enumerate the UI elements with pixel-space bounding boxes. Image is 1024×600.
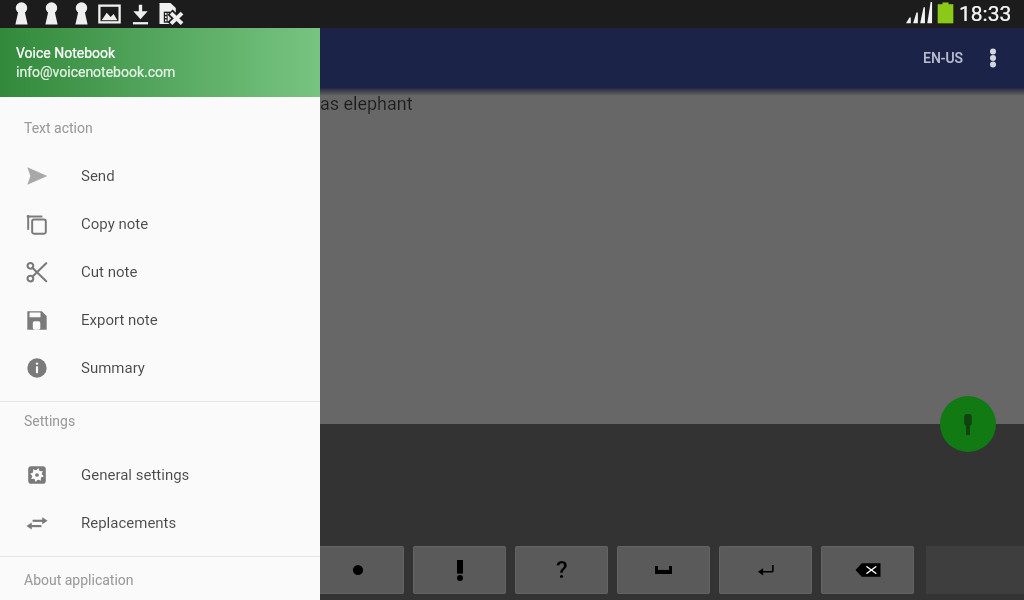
staticText: Export note	[81, 311, 158, 329]
button[interactable]: Exclamation mark key	[413, 546, 506, 594]
staticText: General settings	[81, 466, 190, 484]
button[interactable]: Send	[0, 152, 320, 200]
staticText: as elephant	[320, 93, 413, 114]
staticText: About application	[24, 572, 134, 588]
staticText: ?	[556, 556, 568, 584]
button[interactable]: Copy note	[0, 200, 320, 248]
button[interactable]: EN-US	[913, 38, 974, 78]
staticText: Voice Notebook	[16, 45, 116, 61]
button[interactable]: Enter key	[719, 546, 812, 594]
button[interactable]: Record voice	[940, 396, 996, 452]
staticText: info@voicenotebook.com	[16, 64, 176, 80]
staticText: Text action	[24, 120, 93, 136]
button[interactable]: More options	[974, 34, 1012, 82]
staticText: Cut note	[81, 263, 138, 281]
staticText: Send	[81, 167, 115, 185]
button[interactable]: Backspace key	[821, 546, 914, 594]
staticText: Settings	[24, 413, 76, 429]
button[interactable]: Question mark key	[515, 546, 608, 594]
button[interactable]: Summary	[0, 344, 320, 392]
button[interactable]: Cut note	[0, 248, 320, 296]
button[interactable]: Period key	[311, 546, 404, 594]
staticText: Copy note	[81, 215, 149, 233]
button[interactable]: Replacements	[0, 499, 320, 547]
staticText: Summary	[81, 359, 145, 377]
button[interactable]: Export note	[0, 296, 320, 344]
staticText: Replacements	[81, 514, 177, 532]
button[interactable]: Space key	[617, 546, 710, 594]
staticText: 18:33	[959, 2, 1012, 27]
button[interactable]: General settings	[0, 451, 320, 499]
staticText: EN-US	[923, 50, 964, 66]
